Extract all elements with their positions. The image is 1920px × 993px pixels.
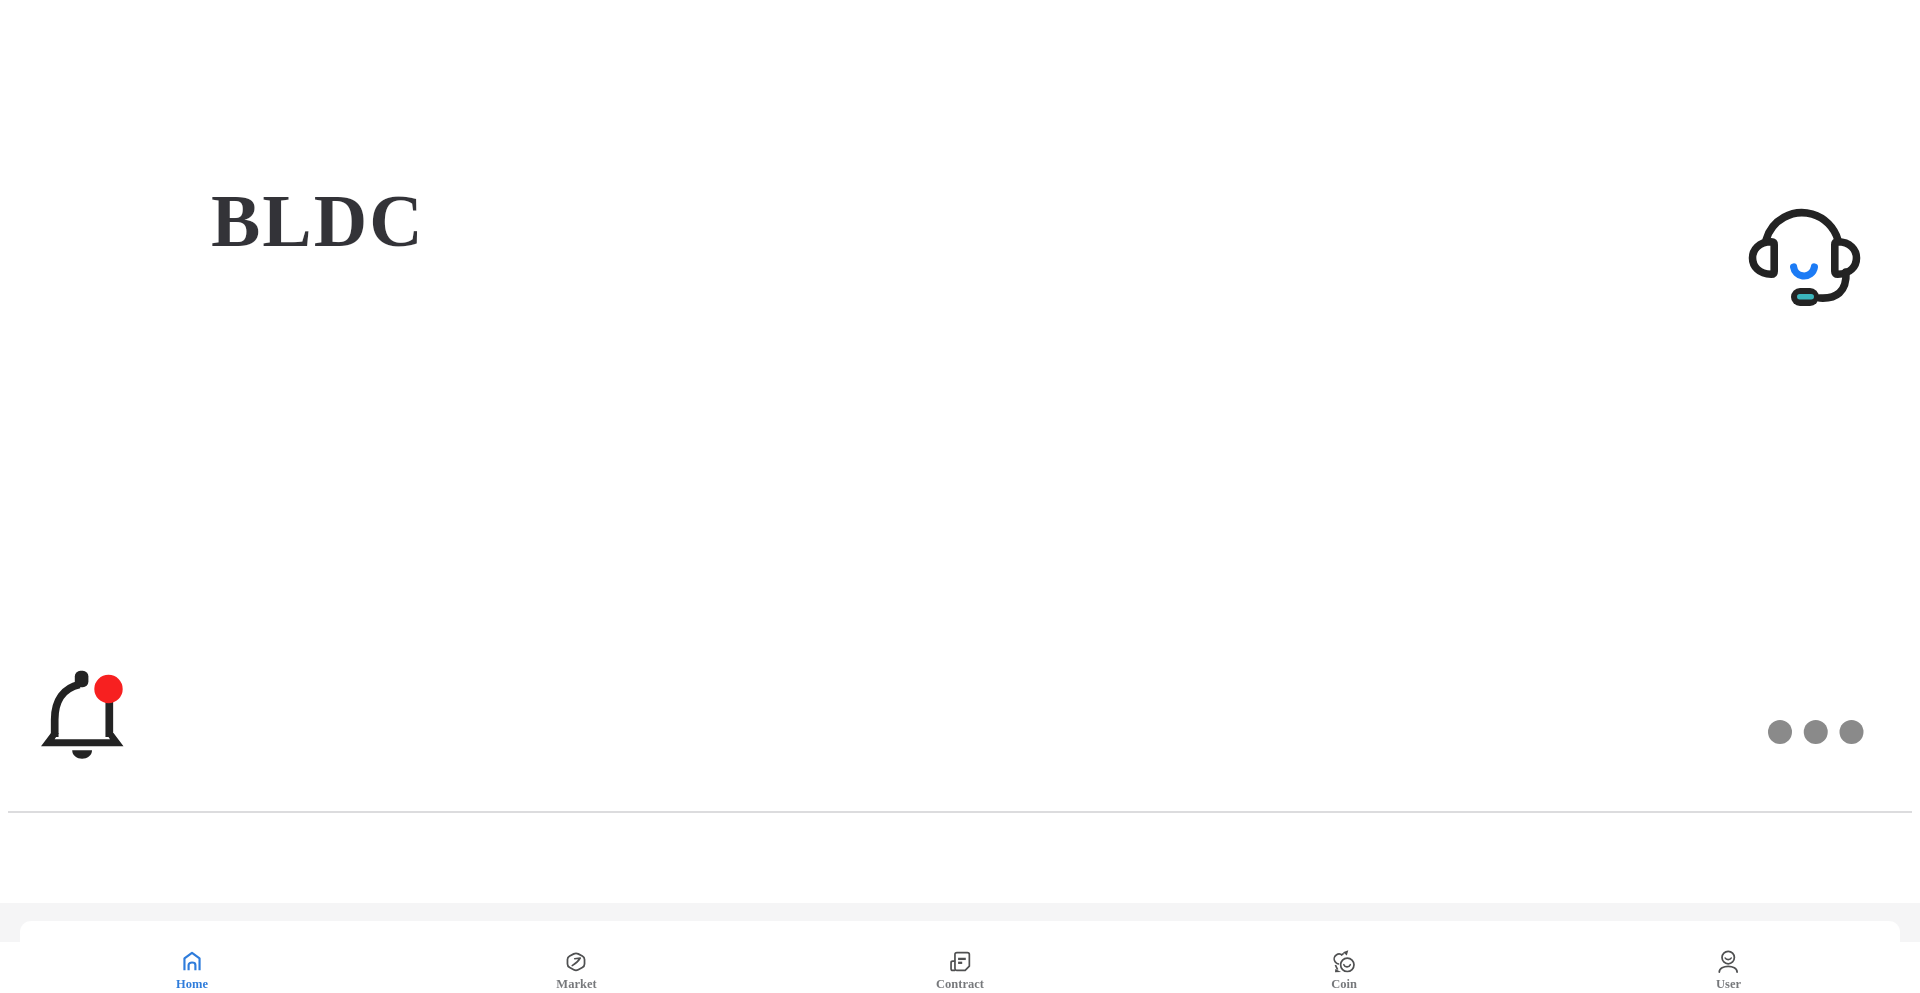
staticText: Market [556,977,597,991]
button[interactable]: Notifications [36,666,130,764]
button[interactable]: Coin [1152,903,1536,993]
staticText: Home [176,977,208,991]
staticText: BLDC [211,180,425,262]
staticText: Contract [936,977,984,991]
button[interactable]: Customer service [1742,199,1866,315]
button[interactable]: Home [0,903,384,993]
button[interactable]: Contract [768,903,1152,993]
staticText: Coin [1331,977,1357,991]
button[interactable]: Market [384,903,768,993]
button[interactable]: User [1536,903,1920,993]
button[interactable]: More [1762,714,1870,750]
staticText: User [1716,977,1741,991]
